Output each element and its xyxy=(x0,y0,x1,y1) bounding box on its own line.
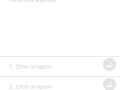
button[interactable]: 2. xyxy=(0,77,120,90)
button[interactable]: Add an image to option 1 xyxy=(103,60,116,73)
staticText: 2. xyxy=(9,83,13,90)
staticText: Enter an option xyxy=(16,83,52,90)
staticText: Enter your question xyxy=(9,0,56,4)
button[interactable]: 1. xyxy=(0,57,120,76)
staticText: Enter an option xyxy=(16,63,52,70)
button[interactable]: Add an image to option 2 xyxy=(103,80,116,90)
staticText: 1. xyxy=(9,63,13,70)
